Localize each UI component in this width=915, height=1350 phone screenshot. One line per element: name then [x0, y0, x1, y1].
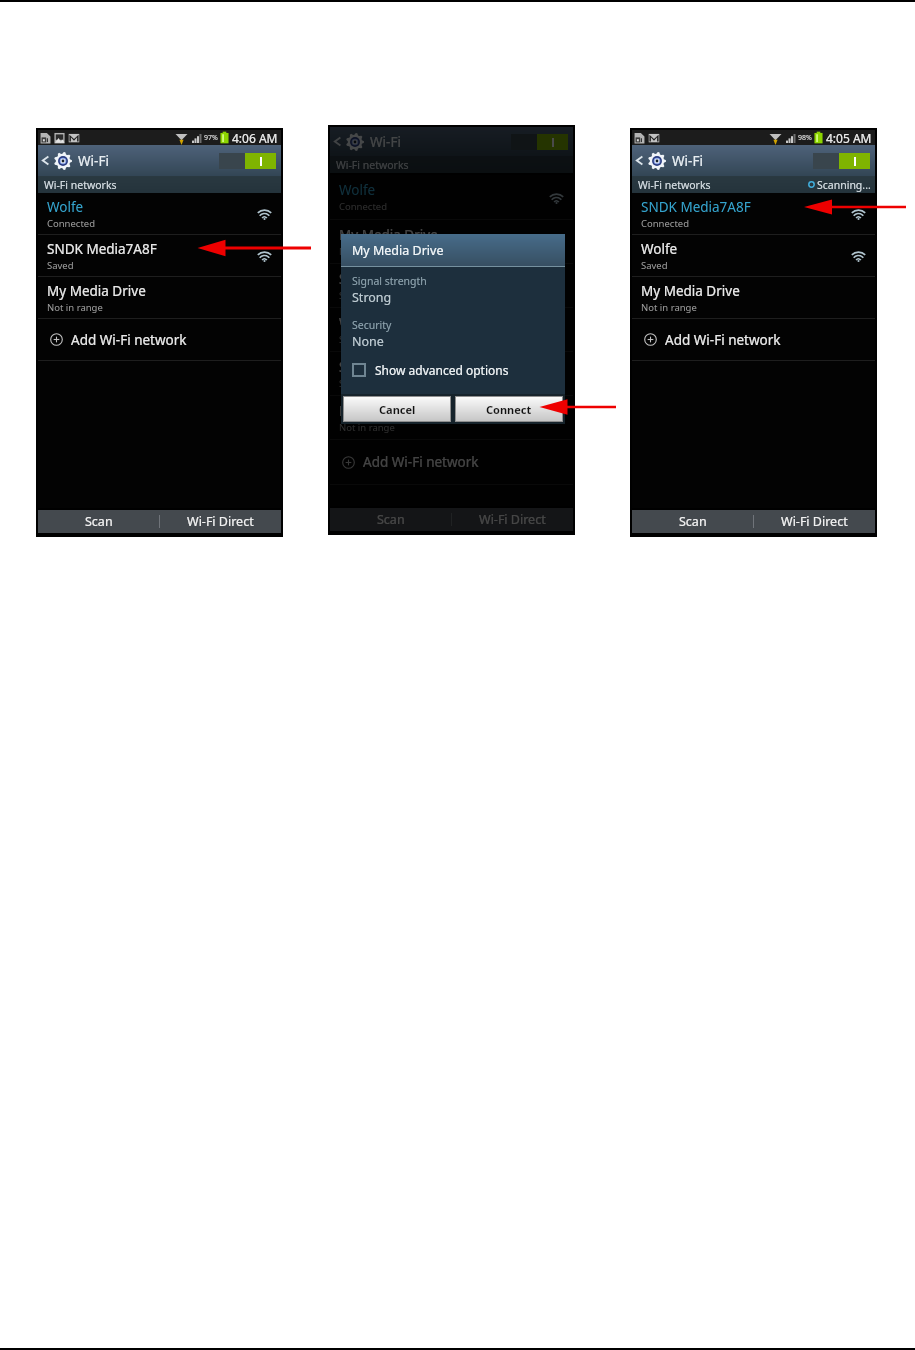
staticText: My Media Drive — [352, 242, 444, 259]
staticText: Connected — [641, 217, 690, 230]
staticText: 98% — [798, 133, 812, 143]
staticText: Wi-Fi networks — [638, 178, 711, 192]
button[interactable]: My Media Drive — [632, 277, 875, 318]
staticText: Not in range — [641, 301, 697, 314]
staticText: Scanning... — [817, 178, 871, 192]
staticText: Scan — [679, 513, 707, 530]
button[interactable]: Scan — [330, 508, 451, 531]
button[interactable]: Back — [39, 154, 52, 167]
staticText: Connected — [339, 200, 388, 213]
staticText: Add Wi-Fi network — [665, 331, 781, 349]
staticText: My Media Drive — [641, 282, 740, 300]
staticText: SNDK Media7A8F — [641, 198, 751, 216]
staticText: Wi-Fi Direct — [187, 513, 254, 530]
staticText: Cancel — [379, 402, 416, 417]
staticText: Wolfe — [641, 240, 678, 258]
button[interactable]: Add Wi-Fi network — [632, 319, 875, 360]
button[interactable]: Cancel — [343, 396, 451, 422]
button[interactable]: Add Wi-Fi network — [38, 319, 281, 360]
staticText: My Media Drive — [47, 282, 146, 300]
staticText: 4:06 AM — [232, 130, 278, 145]
staticText: Security — [352, 318, 392, 332]
button[interactable]: Scan — [38, 510, 159, 533]
staticText: Saved — [47, 259, 74, 272]
staticText: Wi-Fi — [370, 133, 401, 151]
staticText: Scan — [377, 511, 405, 528]
staticText: Wolfe — [47, 198, 84, 216]
staticText: Wi-Fi Direct — [781, 513, 848, 530]
button[interactable]: Wi-Fi Direct — [754, 510, 875, 533]
button[interactable]: My Media Drive — [330, 220, 573, 263]
staticText: Scan — [85, 513, 113, 530]
staticText: My Media Drive — [339, 226, 438, 244]
staticText: Wolfe — [339, 181, 376, 199]
staticText: Wi-Fi — [78, 152, 109, 170]
staticText: Wi-Fi networks — [44, 178, 117, 192]
staticText: Connect — [486, 402, 532, 417]
staticText: Saved — [641, 259, 668, 272]
staticText: Saved — [339, 377, 366, 390]
button[interactable]: Wolfe — [38, 193, 281, 234]
staticText: Not in range — [47, 301, 103, 314]
button[interactable]: Wolfe — [330, 175, 573, 219]
button[interactable]: My Media Drive — [330, 396, 573, 439]
button[interactable]: Show advanced options — [352, 362, 509, 378]
staticText: Not in range — [339, 245, 395, 258]
button[interactable]: Wi-Fi Direct — [452, 508, 573, 531]
button[interactable]: Wi-Fi Direct — [160, 510, 281, 533]
button[interactable]: My Media Drive — [38, 277, 281, 318]
staticText: SNDK Media7A8F — [339, 358, 449, 376]
staticText: Wi-Fi — [672, 152, 703, 170]
staticText: Add Wi-Fi network — [363, 453, 479, 471]
staticText: Not in range — [339, 421, 395, 434]
staticText: Signal strength — [352, 274, 427, 288]
staticText: Wi-Fi networks — [336, 158, 409, 172]
staticText: Connected — [47, 217, 96, 230]
button[interactable]: SNDK Media7A8F — [632, 193, 875, 234]
button[interactable]: Wi-Fi on/off toggle — [219, 153, 276, 169]
button[interactable]: Wolfe — [330, 308, 573, 351]
button[interactable]: Connect — [455, 396, 563, 422]
button[interactable]: Scan — [632, 510, 753, 533]
staticText: Show advanced options — [375, 362, 509, 378]
button[interactable]: Back — [331, 135, 344, 148]
button[interactable]: Back — [633, 154, 646, 167]
staticText: Strong — [352, 289, 392, 306]
staticText: Add Wi-Fi network — [71, 331, 187, 349]
button[interactable]: Add Wi-Fi network — [330, 440, 573, 484]
button[interactable]: SNDK Media7A8F — [330, 352, 573, 395]
staticText: Saved — [339, 289, 366, 302]
button[interactable]: Wolfe — [632, 235, 875, 276]
staticText: 97% — [204, 133, 218, 143]
button[interactable]: Wi-Fi on/off toggle — [813, 153, 870, 169]
staticText: None — [352, 333, 384, 350]
button[interactable]: SNDK Media7A8F — [38, 235, 281, 276]
staticText: Saved — [339, 333, 366, 346]
button[interactable]: Wi-Fi on/off toggle — [511, 134, 568, 150]
staticText: Wi-Fi Direct — [479, 511, 546, 528]
staticText: My Media Drive — [339, 402, 438, 420]
button[interactable]: SNDK Media7A8F — [330, 264, 573, 307]
staticText: Wolfe — [339, 314, 376, 332]
staticText: 4:05 AM — [826, 130, 872, 145]
staticText: SNDK Media7A8F — [339, 270, 449, 288]
staticText: SNDK Media7A8F — [47, 240, 157, 258]
